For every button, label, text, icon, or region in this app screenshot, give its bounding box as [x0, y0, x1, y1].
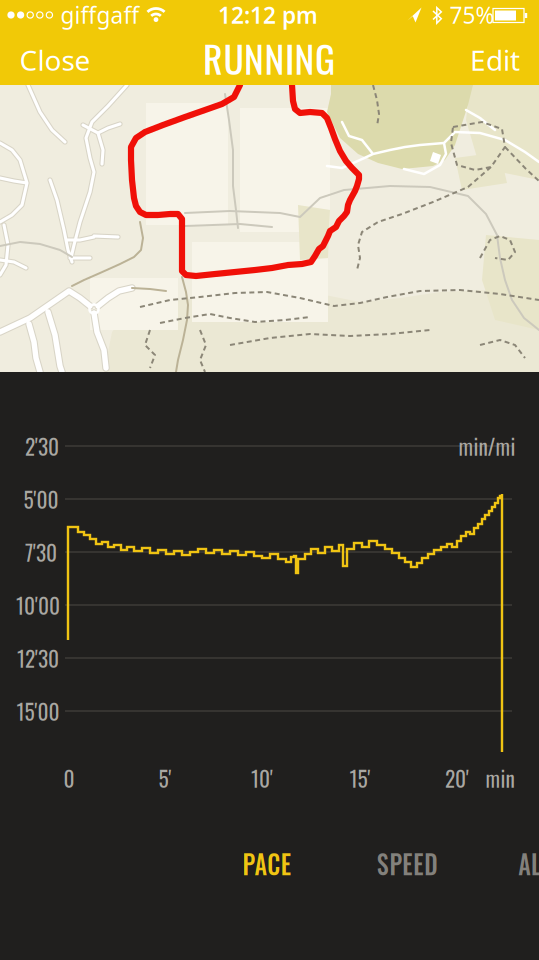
staticText: 12'30 [17, 642, 59, 674]
staticText: PACE [239, 843, 295, 883]
staticText: 5'00 [23, 483, 58, 515]
button[interactable]: Close [7, 31, 102, 89]
staticText: Edit [470, 41, 520, 79]
button[interactable]: Edit [458, 31, 532, 89]
staticText: giffgaff [60, 0, 139, 30]
staticText: 2'30 [25, 430, 59, 462]
staticText: 5' [158, 762, 171, 794]
staticText: 10'00 [16, 589, 60, 621]
staticText: ALTITUDE [512, 843, 539, 883]
staticText: Close [19, 41, 90, 79]
button[interactable]: ALTITUDE [498, 833, 539, 893]
staticText: min [485, 762, 514, 794]
staticText: 20' [445, 762, 469, 794]
staticText: 15' [349, 762, 370, 794]
staticText: 10' [251, 762, 273, 794]
button[interactable]: PACE [225, 833, 309, 893]
staticText: 7'30 [25, 536, 57, 568]
staticText: 12:12 pm [218, 0, 318, 30]
staticText: SPEED [372, 843, 441, 883]
staticText: min/mi [458, 430, 515, 462]
staticText: RUNNING [203, 30, 335, 86]
staticText: 0 [63, 762, 74, 794]
staticText: 15'00 [16, 695, 59, 727]
button[interactable]: SPEED [358, 833, 455, 893]
staticText: 75% [449, 0, 494, 30]
